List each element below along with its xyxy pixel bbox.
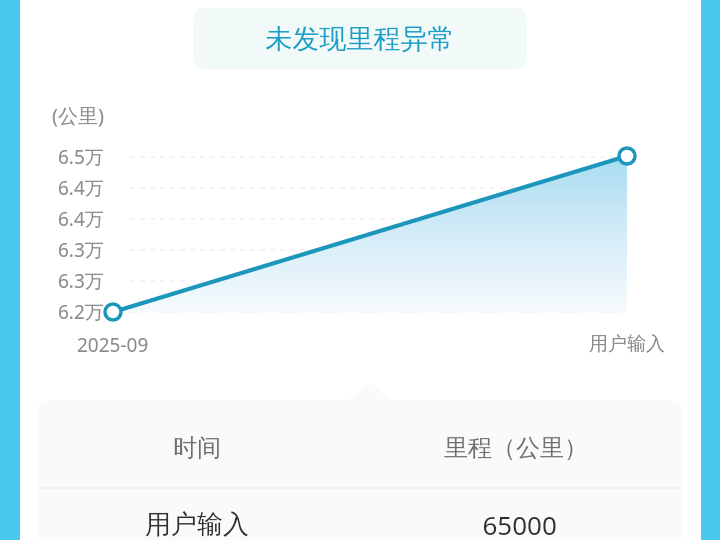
button[interactable]: 未发现里程异常: [193, 8, 527, 69]
button[interactable]: 用户输入 65000 公里: [38, 489, 682, 540]
button[interactable]: 里程记录表: [38, 400, 682, 540]
